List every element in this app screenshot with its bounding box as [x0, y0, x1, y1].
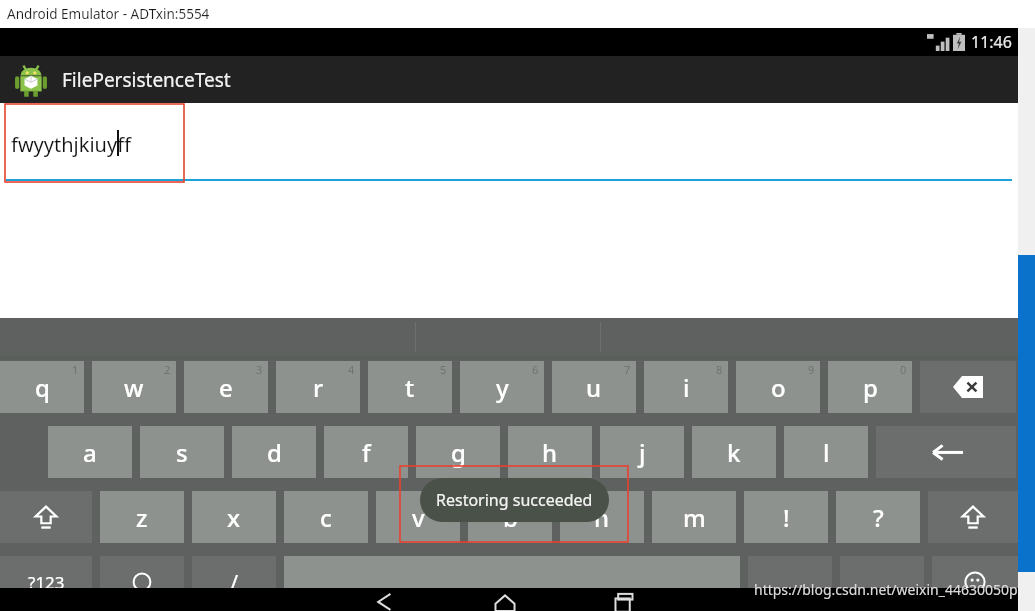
- staticText: f: [362, 436, 371, 469]
- button[interactable]: s: [140, 426, 224, 478]
- staticText: 7: [624, 362, 631, 377]
- button[interactable]: 0: [828, 361, 912, 413]
- staticText: g: [451, 436, 466, 469]
- staticText: 4: [348, 362, 355, 377]
- staticText: 9: [808, 362, 815, 377]
- staticText: z: [136, 501, 148, 534]
- button[interactable]: Backspace: [920, 361, 1016, 413]
- staticText: fwyythjkiuyff: [11, 131, 131, 158]
- staticText: l: [823, 436, 830, 469]
- staticText: c: [320, 501, 332, 534]
- staticText: d: [267, 436, 282, 469]
- button[interactable]: m: [652, 491, 736, 543]
- button[interactable]: ?: [836, 491, 920, 543]
- staticText: 11:46: [971, 31, 1012, 53]
- button[interactable]: 5: [368, 361, 452, 413]
- button[interactable]: n: [560, 491, 644, 543]
- staticText: Android Emulator - ADTxin:5554: [7, 5, 210, 23]
- staticText: ?123: [28, 571, 65, 594]
- staticText: e: [219, 371, 233, 404]
- staticText: https://blog.csdn.net/weixin_44630050p: [754, 580, 1018, 599]
- button[interactable]: 1: [0, 361, 84, 413]
- staticText: /: [230, 567, 239, 597]
- button[interactable]: 2: [92, 361, 176, 413]
- staticText: r: [313, 371, 324, 404]
- button[interactable]: Emoji: [932, 556, 1018, 608]
- button[interactable]: b: [468, 491, 552, 543]
- button[interactable]: /: [192, 556, 276, 608]
- button[interactable]: 6: [460, 361, 544, 413]
- staticText: 0: [900, 362, 907, 377]
- staticText: ?: [873, 501, 884, 534]
- button[interactable]: [284, 556, 740, 608]
- staticText: u: [586, 371, 602, 404]
- button[interactable]: ?123: [0, 556, 92, 608]
- staticText: q: [35, 371, 50, 404]
- button[interactable]: fwyythjkiuyff: [6, 129, 1012, 179]
- button[interactable]: Language: [100, 556, 184, 608]
- button[interactable]: Recents: [608, 592, 642, 611]
- button[interactable]: Home: [488, 592, 522, 611]
- staticText: t: [405, 371, 415, 404]
- button[interactable]: Back: [368, 592, 402, 611]
- staticText: 8: [716, 362, 723, 377]
- staticText: 2: [164, 362, 171, 377]
- staticText: m: [683, 501, 706, 534]
- staticText: j: [639, 436, 646, 469]
- button[interactable]: k: [692, 426, 776, 478]
- staticText: b: [503, 501, 518, 534]
- button[interactable]: ,: [840, 556, 924, 608]
- staticText: .: [787, 567, 793, 597]
- staticText: h: [542, 436, 558, 469]
- button[interactable]: Enter: [876, 426, 1016, 478]
- staticText: i: [683, 371, 690, 404]
- button[interactable]: l: [784, 426, 868, 478]
- button[interactable]: a: [48, 426, 132, 478]
- staticText: FilePersistenceTest: [62, 67, 231, 93]
- staticText: 5: [440, 362, 447, 377]
- button[interactable]: c: [284, 491, 368, 543]
- staticText: !: [783, 501, 790, 534]
- staticText: n: [594, 501, 610, 534]
- staticText: x: [227, 501, 241, 534]
- button[interactable]: 7: [552, 361, 636, 413]
- staticText: 1: [72, 362, 79, 377]
- button[interactable]: j: [600, 426, 684, 478]
- button[interactable]: 8: [644, 361, 728, 413]
- button[interactable]: f: [324, 426, 408, 478]
- staticText: s: [176, 436, 188, 469]
- staticText: a: [83, 436, 97, 469]
- button[interactable]: x: [192, 491, 276, 543]
- staticText: w: [124, 371, 144, 404]
- button[interactable]: g: [416, 426, 500, 478]
- staticText: p: [863, 371, 878, 404]
- staticText: o: [771, 371, 786, 404]
- button[interactable]: Shift: [928, 491, 1018, 543]
- button[interactable]: 3: [184, 361, 268, 413]
- button[interactable]: h: [508, 426, 592, 478]
- staticText: y: [496, 371, 509, 404]
- staticText: ,: [879, 567, 885, 597]
- button[interactable]: !: [744, 491, 828, 543]
- button[interactable]: 9: [736, 361, 820, 413]
- button[interactable]: 4: [276, 361, 360, 413]
- staticText: 3: [256, 362, 263, 377]
- button[interactable]: d: [232, 426, 316, 478]
- staticText: Restoring succeeded: [436, 489, 593, 511]
- staticText: 6: [532, 362, 539, 377]
- button[interactable]: v: [376, 491, 460, 543]
- staticText: k: [727, 436, 741, 469]
- button[interactable]: z: [100, 491, 184, 543]
- button[interactable]: Shift: [0, 491, 92, 543]
- staticText: v: [412, 501, 425, 534]
- button[interactable]: .: [748, 556, 832, 608]
